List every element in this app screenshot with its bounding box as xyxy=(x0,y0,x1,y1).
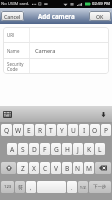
staticText: 02:59 PM xyxy=(92,1,111,7)
button[interactable]: OK xyxy=(89,11,111,21)
staticText: C xyxy=(43,164,48,173)
staticText: URl xyxy=(7,32,15,38)
button[interactable]: J xyxy=(73,143,83,155)
staticText: R xyxy=(38,126,43,135)
staticText: D xyxy=(32,145,37,154)
button[interactable]: R xyxy=(35,124,45,136)
button[interactable]: C xyxy=(40,162,50,174)
staticText: B xyxy=(65,164,70,173)
button[interactable]: P xyxy=(101,124,111,136)
button[interactable]: U xyxy=(68,124,78,136)
button[interactable]: F xyxy=(40,143,50,155)
staticText: Q xyxy=(4,126,10,135)
button[interactable]: M xyxy=(84,162,94,174)
button[interactable]: W xyxy=(13,124,23,136)
staticText: OK xyxy=(96,13,104,20)
staticText: No USIM card. xyxy=(1,1,30,7)
button[interactable]: A xyxy=(7,143,17,155)
staticText: . xyxy=(71,184,73,191)
staticText: Add camera xyxy=(38,12,75,20)
staticText: Camera xyxy=(35,47,56,55)
button[interactable]: URl xyxy=(3,27,109,42)
button[interactable]: Shift xyxy=(1,162,16,174)
button[interactable]: K xyxy=(84,143,94,155)
staticText: O xyxy=(92,126,98,135)
staticText: U xyxy=(71,126,76,135)
staticText: K xyxy=(87,145,92,154)
button[interactable]: Q xyxy=(1,124,12,136)
button[interactable]: V xyxy=(51,162,61,174)
staticText: Name xyxy=(7,48,20,54)
button[interactable]: Cancel xyxy=(1,11,24,21)
staticText: F xyxy=(43,145,47,154)
button[interactable]: D xyxy=(29,143,39,155)
button[interactable]: Z xyxy=(17,162,28,174)
staticText: I xyxy=(83,126,86,135)
button[interactable]: H xyxy=(62,143,72,155)
staticText: M xyxy=(86,164,92,173)
button[interactable]: I xyxy=(79,124,89,136)
staticText: P xyxy=(104,126,108,135)
button[interactable]: ½字 xyxy=(78,181,88,193)
button[interactable]: 符 xyxy=(15,181,25,193)
button[interactable]: Hide keyboard xyxy=(100,111,107,118)
staticText: T xyxy=(49,126,53,135)
button[interactable]: Y xyxy=(57,124,67,136)
button[interactable]: G xyxy=(51,143,61,155)
staticText: G xyxy=(54,145,59,154)
button[interactable]: Backspace xyxy=(95,162,111,174)
button[interactable]: Security Code xyxy=(3,59,109,74)
staticText: J xyxy=(77,145,79,154)
staticText: V xyxy=(54,164,58,173)
button[interactable]: B xyxy=(62,162,72,174)
staticText: ½字 xyxy=(80,185,87,190)
staticText: 123 xyxy=(4,184,12,190)
staticText: 符 xyxy=(18,184,23,190)
staticText: X xyxy=(32,164,36,173)
staticText: Cancel xyxy=(4,13,21,20)
staticText: Security Code xyxy=(7,61,24,72)
button[interactable]: Name xyxy=(3,43,109,58)
staticText: , xyxy=(30,184,32,191)
button[interactable]: O xyxy=(90,124,100,136)
staticText: W xyxy=(15,126,22,135)
button[interactable]: N xyxy=(73,162,83,174)
staticText: Z xyxy=(21,164,25,173)
staticText: N xyxy=(75,164,81,173)
button[interactable]: , xyxy=(26,181,36,193)
staticText: Y xyxy=(60,126,64,135)
button[interactable]: S xyxy=(18,143,28,155)
staticText: S xyxy=(21,145,25,154)
button[interactable]: L xyxy=(95,143,105,155)
button[interactable]: . xyxy=(67,181,77,193)
button[interactable]: E xyxy=(24,124,34,136)
button[interactable]: T xyxy=(46,124,56,136)
button[interactable]: 123 xyxy=(1,181,14,193)
staticText: L xyxy=(98,145,102,154)
button[interactable]: X xyxy=(29,162,39,174)
staticText: H xyxy=(65,145,70,154)
staticText: 下一步 xyxy=(93,184,107,190)
button[interactable]: 下一步 xyxy=(89,181,111,193)
staticText: E xyxy=(27,126,31,135)
staticText: A xyxy=(10,145,15,154)
button[interactable]: Space xyxy=(37,181,66,193)
button[interactable]: Switch keyboard xyxy=(3,111,12,118)
